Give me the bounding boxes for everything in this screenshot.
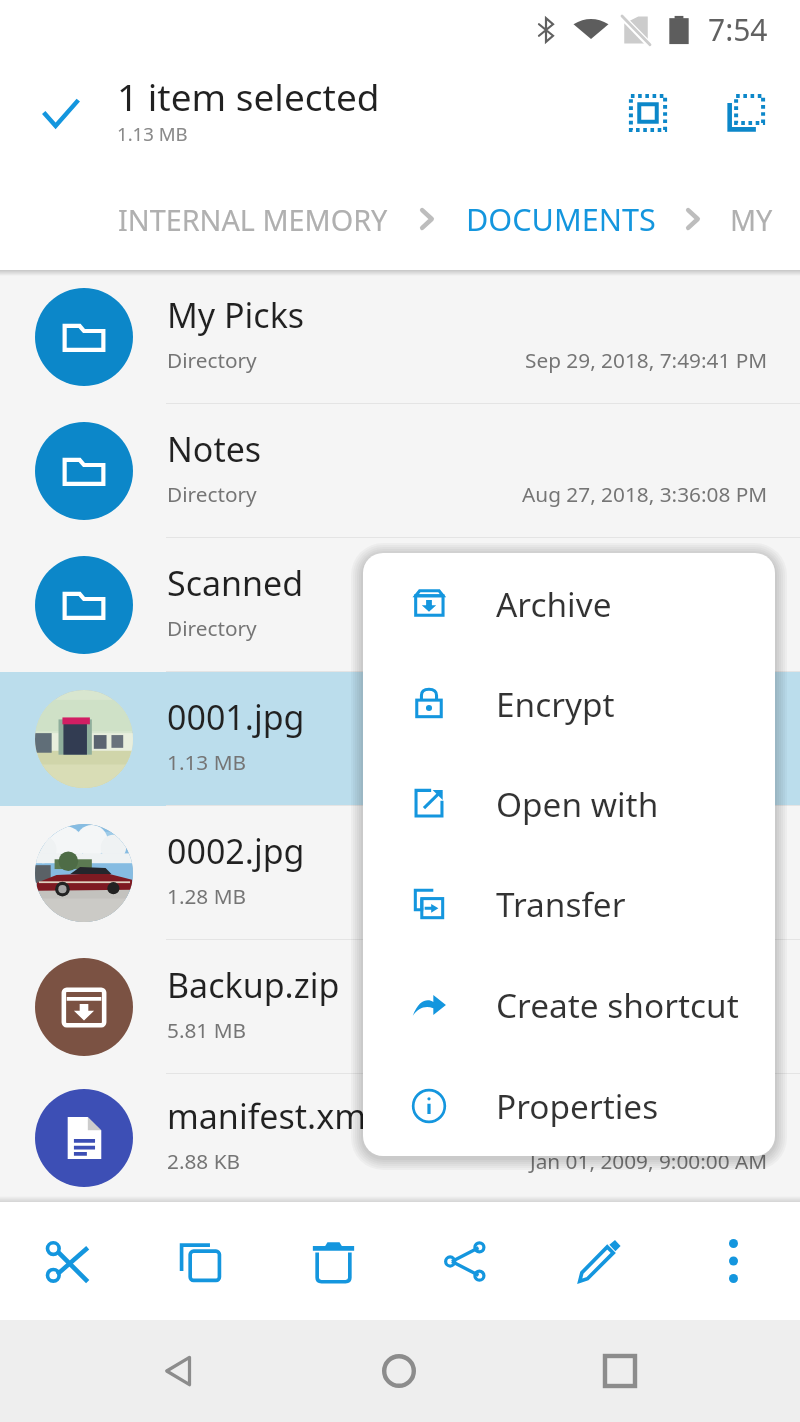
staticText: Sep 29, 2018, 7:49:41 PM — [525, 346, 768, 374]
button[interactable]: Delete — [285, 1202, 381, 1320]
button[interactable]: manifest.xml — [0, 1074, 800, 1202]
button[interactable]: Encrypt — [363, 653, 775, 753]
button[interactable]: Create shortcut — [363, 954, 775, 1055]
staticText: DOCUMENTS — [466, 198, 656, 240]
button[interactable]: Invert selection — [697, 58, 795, 168]
button[interactable]: Cut — [19, 1202, 115, 1320]
staticText: 0002.jpg — [167, 828, 305, 874]
staticText: Directory — [167, 614, 257, 642]
staticText: 5.81 MB — [167, 1016, 247, 1044]
button[interactable]: Archive — [363, 553, 775, 653]
button[interactable]: INTERNAL MEMORY — [118, 168, 388, 270]
staticText: Notes — [167, 426, 262, 472]
staticText: Aug 27, 2018, 3:36:08 PM — [522, 480, 768, 508]
staticText: Backup.zip — [167, 962, 340, 1008]
button[interactable]: My Picks — [0, 270, 800, 404]
staticText: MY PICKS — [730, 200, 800, 239]
button[interactable]: MY PICKS — [730, 168, 800, 270]
staticText: 1 item selected — [117, 71, 380, 121]
button[interactable]: Transfer — [363, 853, 775, 954]
button[interactable]: More options — [685, 1202, 781, 1320]
button[interactable]: Notes — [0, 404, 800, 538]
staticText: 0001.jpg — [167, 694, 305, 740]
staticText: 1.13 MB — [117, 121, 188, 146]
staticText: Jan 01, 2009, 9:00:00 AM — [530, 1147, 768, 1175]
staticText: Directory — [167, 480, 257, 508]
staticText: Properties — [496, 1083, 659, 1128]
staticText: Transfer — [496, 881, 626, 926]
staticText: manifest.xml — [167, 1093, 375, 1139]
button[interactable]: Rename — [551, 1202, 647, 1320]
staticText: Scanned — [167, 560, 304, 606]
button[interactable]: Properties — [363, 1055, 775, 1156]
button[interactable]: DOCUMENTS — [466, 168, 656, 270]
button[interactable]: Recents — [576, 1320, 664, 1422]
staticText: INTERNAL MEMORY — [118, 200, 388, 239]
button[interactable]: Scanned — [0, 538, 800, 672]
staticText: Encrypt — [496, 681, 615, 726]
staticText: Archive — [496, 581, 612, 626]
button[interactable]: 0001.jpg — [0, 672, 800, 806]
staticText: 2.88 KB — [167, 1147, 241, 1175]
button[interactable]: Select all — [599, 58, 697, 168]
button[interactable]: 0002.jpg — [0, 806, 800, 940]
staticText: 1.28 MB — [167, 882, 247, 910]
staticText: 1.13 MB — [167, 748, 247, 776]
button[interactable]: Backup.zip — [0, 940, 800, 1074]
staticText: Create shortcut — [496, 982, 739, 1027]
staticText: Open with — [496, 781, 659, 826]
staticText: Directory — [167, 346, 257, 374]
staticText: 7:54 — [708, 9, 768, 50]
button[interactable]: Done — [0, 58, 122, 168]
button[interactable]: Share — [418, 1202, 514, 1320]
staticText: My Picks — [167, 292, 305, 338]
button[interactable]: Open with — [363, 753, 775, 853]
button[interactable]: Home — [355, 1320, 443, 1422]
staticText: Jul 15, 2018, 1:20:11 PM — [537, 614, 768, 642]
button[interactable]: Copy — [152, 1202, 248, 1320]
button[interactable]: Back — [136, 1320, 224, 1422]
